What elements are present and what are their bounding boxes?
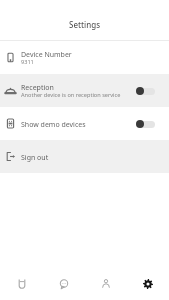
button[interactable]: Messages (43, 267, 85, 300)
staticText: Settings (69, 19, 101, 30)
staticText: Show demo devices (21, 120, 86, 130)
button[interactable]: Device Number (0, 41, 169, 74)
button[interactable]: Sign out (0, 140, 169, 173)
button[interactable]: Devices (0, 267, 43, 300)
button[interactable]: Toggle (136, 118, 155, 130)
button[interactable]: Toggle (136, 85, 155, 97)
staticText: Reception (21, 83, 54, 93)
staticText: Sign out (21, 153, 49, 163)
staticText: Device Number (21, 50, 72, 60)
staticText: 9311 (21, 58, 34, 66)
staticText: Another device is on reception service (21, 91, 121, 99)
button[interactable]: Settings (127, 267, 169, 300)
button[interactable]: Show demo devices (0, 107, 169, 140)
button[interactable]: Account (85, 267, 127, 300)
button[interactable]: Reception (0, 74, 169, 107)
